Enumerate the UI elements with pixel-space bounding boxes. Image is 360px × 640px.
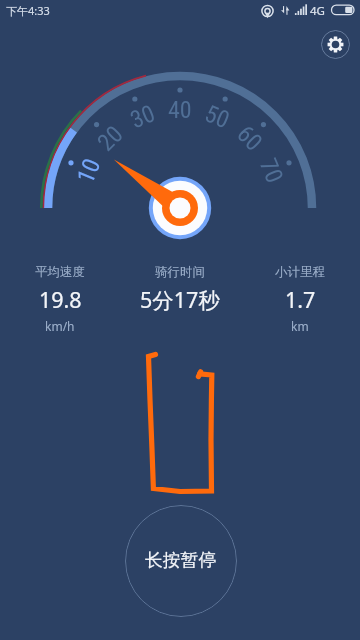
staticText: 平均速度 [35, 264, 85, 280]
staticText: 10 [71, 154, 103, 186]
staticText: 4G [310, 3, 325, 19]
staticText: 长按暂停 [145, 549, 217, 571]
staticText: 1.7 [285, 285, 316, 314]
staticText: 30 [126, 99, 158, 131]
staticText: 小计里程 [275, 264, 325, 280]
button[interactable]: Settings [321, 30, 350, 59]
staticText: km/h [45, 318, 75, 334]
staticText: 骑行时间 [155, 264, 205, 280]
staticText: 40 [168, 96, 192, 120]
staticText: 19.8 [39, 285, 82, 314]
staticText: 5分17秒 [140, 285, 220, 314]
button[interactable]: 长按暂停 [125, 505, 237, 617]
staticText: km [291, 318, 309, 334]
staticText: 70 [257, 154, 289, 186]
staticText: 50 [202, 99, 234, 131]
staticText: 20 [92, 120, 126, 154]
staticText: 下午4:33 [6, 3, 50, 18]
staticText: 60 [234, 120, 268, 154]
